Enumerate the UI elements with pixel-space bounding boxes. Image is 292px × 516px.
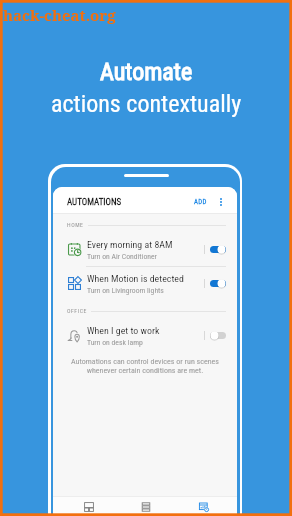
button[interactable]: Scenes — [117, 502, 175, 516]
staticText: actions contextually — [51, 90, 242, 118]
staticText: Turn on desk lamp — [87, 338, 143, 347]
button[interactable]: ADD — [191, 192, 210, 212]
button[interactable]: Enabled — [210, 245, 226, 254]
staticText: When I get to work — [87, 325, 160, 337]
staticText: AUTOMATIONS — [67, 197, 122, 208]
button[interactable]: When Motion is detected — [53, 267, 237, 300]
button[interactable]: Disabled — [210, 331, 226, 340]
staticText: Turn on Livingroom lights — [87, 286, 164, 295]
button[interactable]: Automations — [175, 502, 233, 516]
staticText: Every morning at 8AM — [87, 239, 173, 251]
button[interactable]: When I get to work — [53, 319, 237, 352]
staticText: hack-cheat.org — [3, 5, 116, 25]
staticText: Turn on Air Conditioner — [87, 252, 157, 261]
button[interactable]: Enabled — [210, 279, 226, 288]
button[interactable]: Devices — [60, 502, 117, 516]
staticText: OFFICE — [67, 308, 87, 315]
staticText: ADD — [194, 198, 207, 206]
button[interactable]: Every morning at 8AM — [53, 233, 237, 266]
button[interactable]: More options — [216, 193, 226, 211]
staticText: Automations can control devices or run s… — [63, 357, 227, 375]
staticText: Automate — [100, 58, 193, 86]
staticText: HOME — [67, 222, 84, 229]
staticText: When Motion is detected — [87, 273, 184, 285]
